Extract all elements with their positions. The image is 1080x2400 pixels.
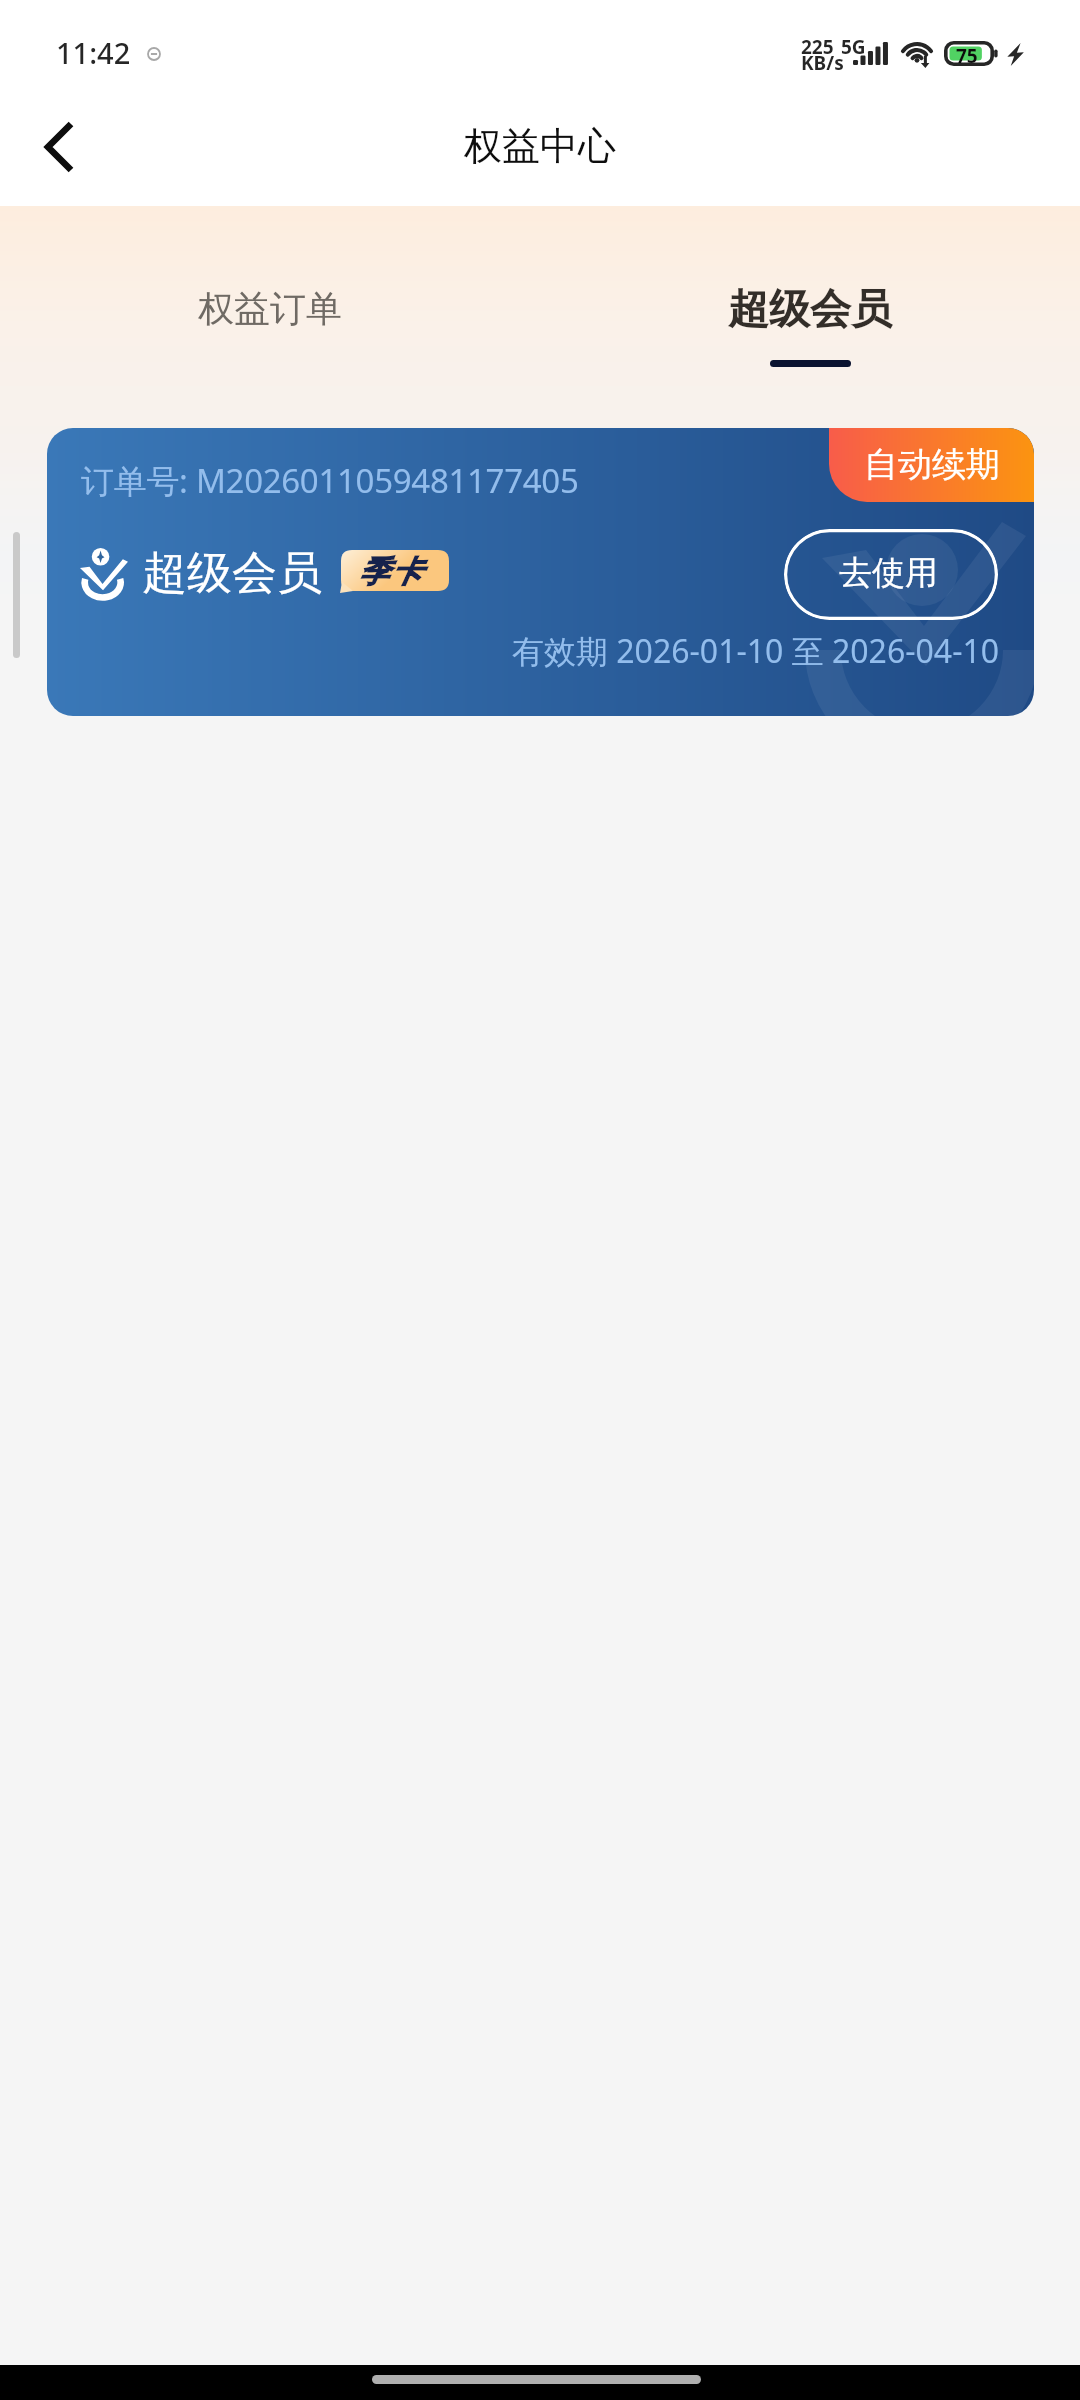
staticText: 11:42 [56, 33, 131, 72]
staticText: 权益中心 [464, 122, 616, 170]
button[interactable]: 去使用 [784, 529, 998, 620]
staticText: 自动续期 [864, 443, 1000, 486]
button[interactable]: 自动续期 [829, 428, 1034, 502]
staticText: 订单号: M2026011059481177405 [81, 458, 579, 503]
staticText: 季卡 [357, 553, 423, 591]
staticText: 225 [801, 34, 834, 60]
staticText: 权益订单 [198, 286, 342, 331]
staticText: KB/s [801, 50, 844, 76]
button[interactable]: 超级会员 [630, 246, 990, 366]
button[interactable]: Back [11, 99, 107, 195]
staticText: 超级会员 [142, 545, 322, 602]
staticText: 去使用 [839, 552, 938, 594]
staticText: 有效期 2026-01-10 至 2026-04-10 [512, 629, 1000, 673]
staticText: 75 [956, 43, 978, 69]
staticText: 超级会员 [728, 284, 892, 336]
staticText: 5G [841, 34, 866, 60]
button[interactable]: 订单号: M2026011059481177405 [47, 428, 1034, 716]
button[interactable]: 权益订单 [90, 246, 450, 366]
